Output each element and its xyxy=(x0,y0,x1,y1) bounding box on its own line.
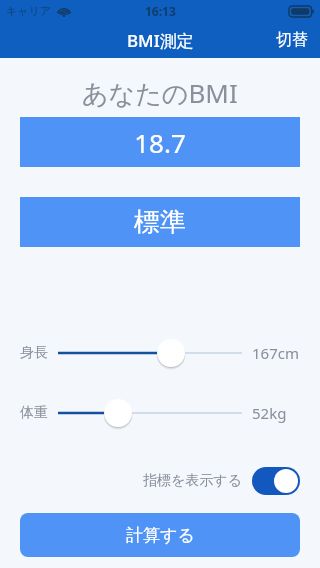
staticText: 標準 xyxy=(134,206,186,239)
button[interactable]: 身長 xyxy=(58,336,242,370)
staticText: 167cm xyxy=(252,343,302,363)
staticText: BMI測定 xyxy=(127,29,194,52)
other: Battery xyxy=(289,6,314,17)
staticText: 計算する xyxy=(126,525,195,546)
button[interactable]: 計算する xyxy=(20,513,300,557)
staticText: 体重 xyxy=(20,404,58,422)
staticText: 切替 xyxy=(276,30,308,50)
staticText: あなたのBMI xyxy=(82,75,238,108)
button[interactable]: 体重 xyxy=(58,396,242,430)
staticText: 16:13 xyxy=(145,3,176,19)
button[interactable]: 切替 xyxy=(264,24,320,56)
button[interactable]: 指標を表示する xyxy=(252,467,300,495)
staticText: 52kg xyxy=(252,403,302,423)
staticText: 18.7 xyxy=(134,125,186,160)
other: Wi-Fi xyxy=(57,6,71,17)
staticText: キャリア xyxy=(6,4,52,18)
staticText: 指標を表示する xyxy=(143,472,242,490)
staticText: 身長 xyxy=(20,344,58,362)
